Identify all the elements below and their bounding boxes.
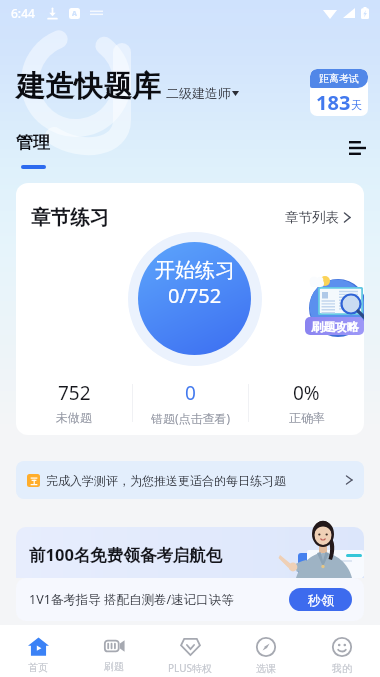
- button[interactable]: 距离考试: [310, 69, 368, 116]
- staticText: 建造快题库: [16, 68, 161, 105]
- staticText: 秒领: [308, 592, 334, 608]
- button[interactable]: 开始练习: [138, 242, 251, 355]
- staticText: 刷题: [104, 660, 124, 673]
- staticText: 我的: [332, 662, 352, 675]
- staticText: 错题(点击查看): [151, 410, 231, 426]
- staticText: 未做题: [56, 410, 92, 425]
- button[interactable]: 1V1备考指导 搭配自测卷/速记口诀等: [16, 578, 364, 621]
- button[interactable]: 完成入学测评，为您推送更适合的每日练习题: [16, 461, 364, 499]
- staticText: 天: [351, 98, 362, 112]
- staticText: 刷题攻略: [311, 319, 359, 334]
- staticText: 183: [316, 89, 351, 116]
- staticText: 0%: [293, 380, 320, 406]
- staticText: 前100名免费领备考启航包: [29, 543, 223, 566]
- staticText: 0/752: [168, 282, 222, 309]
- staticText: 6:44: [11, 5, 35, 21]
- staticText: A: [72, 9, 77, 19]
- button[interactable]: 刷题: [76, 625, 152, 677]
- staticText: 开始练习: [155, 258, 235, 283]
- button[interactable]: PLUS特权: [152, 625, 228, 677]
- button[interactable]: 秒领: [289, 588, 352, 611]
- staticText: 首页: [28, 661, 48, 674]
- button[interactable]: 我的: [304, 625, 380, 677]
- staticText: 选课: [256, 662, 276, 675]
- button[interactable]: 0: [133, 379, 248, 427]
- staticText: 1V1备考指导 搭配自测卷/速记口诀等: [29, 591, 234, 608]
- button[interactable]: 0%: [249, 379, 364, 427]
- staticText: 完成入学测评，为您推送更适合的每日练习题: [46, 473, 286, 488]
- button[interactable]: 管理: [16, 132, 50, 169]
- button[interactable]: 刷题攻略: [305, 276, 364, 338]
- staticText: 管理: [16, 132, 50, 153]
- staticText: 距离考试: [319, 72, 359, 85]
- staticText: 章节列表: [285, 209, 339, 226]
- staticText: PLUS特权: [168, 661, 212, 675]
- button[interactable]: 章节列表: [285, 209, 350, 226]
- button[interactable]: 选课: [228, 625, 304, 677]
- staticText: 0: [185, 380, 196, 406]
- staticText: 二级建造师: [166, 85, 231, 101]
- button[interactable]: 首页: [0, 625, 76, 677]
- button[interactable]: 二级建造师: [166, 85, 239, 105]
- staticText: 章节练习: [31, 205, 109, 230]
- button[interactable]: 752: [16, 379, 132, 427]
- staticText: 752: [58, 380, 91, 406]
- staticText: 正确率: [289, 410, 325, 425]
- button[interactable]: Filter: [341, 133, 373, 163]
